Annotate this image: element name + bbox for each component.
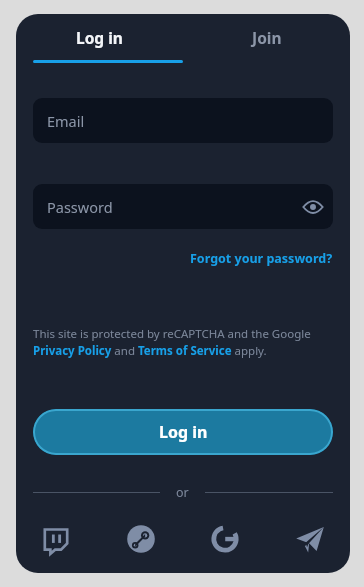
button[interactable]: Log in — [33, 409, 333, 455]
button[interactable]: Email — [33, 98, 333, 143]
button[interactable]: Sign in with Telegram — [287, 516, 333, 562]
staticText: Email — [47, 111, 85, 131]
button[interactable]: Sign in with Google — [202, 516, 248, 562]
staticText: Password — [47, 197, 113, 217]
staticText: Forgot your password? — [190, 250, 333, 267]
button[interactable]: Forgot your password? — [190, 248, 333, 269]
button[interactable]: Sign in with Twitch — [33, 516, 79, 562]
staticText: or — [176, 484, 189, 501]
button[interactable]: Password — [33, 184, 333, 229]
staticText: Join — [252, 27, 282, 48]
button[interactable]: Log in — [16, 14, 183, 60]
button[interactable]: Sign in with Steam — [118, 516, 164, 562]
staticText: This site is protected by reCAPTCHA and … — [33, 326, 333, 358]
button[interactable]: Join — [183, 14, 350, 60]
button[interactable]: Show password — [293, 187, 333, 227]
staticText: Log in — [159, 421, 208, 443]
staticText: Log in — [76, 27, 123, 48]
